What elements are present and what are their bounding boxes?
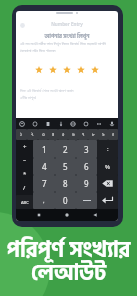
button[interactable]: – [16, 153, 33, 167]
button[interactable]: Backspace [97, 175, 118, 192]
button[interactable]: ১ [16, 129, 27, 140]
button[interactable]: 3 [76, 140, 97, 158]
staticText: ৭ [82, 132, 85, 137]
staticText: লেআউট [0, 256, 137, 291]
button[interactable]: Enter [97, 192, 118, 209]
staticText: আপনার সংখ্যা লিখুন [16, 32, 118, 41]
button[interactable]: Translate [69, 120, 77, 128]
button[interactable]: 1 [33, 140, 55, 158]
staticText: ABC [21, 200, 29, 205]
staticText: 3 [84, 144, 89, 155]
staticText: 8 [63, 178, 68, 189]
button[interactable]: Sticker [31, 120, 39, 128]
button[interactable]: Space [76, 192, 97, 209]
button[interactable]: Star [77, 66, 85, 74]
staticText: 4 [42, 161, 47, 172]
button[interactable]: ২ [27, 129, 38, 140]
staticText: এই সব সংখ্যা সঠিক ভাবে লিখুন নিচের কিবোর… [20, 41, 112, 53]
staticText: 1 [42, 144, 47, 155]
staticText: % [105, 163, 110, 171]
staticText: ৯ [102, 132, 105, 137]
button[interactable]: ৪ [48, 129, 58, 140]
button[interactable]: Back [19, 22, 26, 29]
button[interactable]: Back [90, 210, 100, 220]
button[interactable]: Star [49, 66, 57, 74]
staticText: , [43, 197, 45, 205]
button[interactable]: 4 [33, 158, 55, 175]
staticText: ৪ [52, 132, 55, 137]
staticText: 0 [63, 195, 68, 206]
button[interactable]: 6 [76, 158, 97, 175]
button[interactable]: ৯ [98, 129, 108, 140]
button[interactable]: 0 [55, 192, 76, 209]
staticText: * [23, 170, 27, 178]
staticText: 2 [63, 144, 68, 155]
button[interactable]: 5 [55, 158, 76, 175]
staticText: 6 [84, 161, 89, 172]
staticText: – [23, 156, 27, 164]
button[interactable]: Theme [82, 120, 90, 128]
button[interactable]: Star [91, 66, 99, 74]
staticText: পরিপূর্ণ সংখ্যার [0, 233, 137, 268]
button[interactable]: ৩ [38, 129, 48, 140]
button[interactable]: / [16, 181, 33, 195]
button[interactable]: Voice input [108, 120, 116, 128]
staticText: নিচে এই কিবোর্ড থেকে সংখ্যা প্রবেশ করান … [20, 88, 100, 101]
button[interactable]: ৮ [88, 129, 98, 140]
staticText: 5 [63, 161, 68, 172]
staticText: Number Entry [16, 21, 118, 27]
button[interactable]: Star [63, 66, 71, 74]
button[interactable]: Clipboard [44, 120, 52, 128]
button[interactable]: ৭ [78, 129, 88, 140]
button[interactable]: , [33, 192, 55, 209]
staticText: ০ [112, 132, 115, 137]
button[interactable]: + [16, 140, 33, 153]
button[interactable]: Home [62, 210, 72, 220]
button[interactable]: ০ [108, 129, 118, 140]
button[interactable]: Emoji [18, 120, 26, 128]
button[interactable]: ৬ [68, 129, 78, 140]
staticText: / [23, 184, 26, 192]
staticText: 9 [84, 178, 89, 189]
staticText: : [107, 145, 109, 153]
staticText: + [23, 143, 27, 151]
button[interactable]: Star [35, 66, 43, 74]
staticText: ১ [20, 132, 23, 137]
staticText: ৮ [92, 132, 95, 137]
staticText: ৬ [72, 132, 75, 137]
button[interactable]: * [16, 167, 33, 181]
button[interactable]: 7 [33, 175, 55, 192]
staticText: ২ [31, 132, 34, 137]
staticText: 7 [42, 178, 47, 189]
button[interactable]: 2 [55, 140, 76, 158]
button[interactable]: ABC [16, 195, 33, 209]
staticText: ৫ [62, 132, 65, 137]
button[interactable]: : [97, 140, 118, 158]
button[interactable]: % [97, 158, 118, 175]
button[interactable]: ৫ [58, 129, 68, 140]
button[interactable]: Share [57, 120, 65, 128]
staticText: ৩ [42, 132, 45, 137]
button[interactable]: 8 [55, 175, 76, 192]
button[interactable]: More options [95, 120, 103, 128]
button[interactable]: 9 [76, 175, 97, 192]
button[interactable]: Recents [34, 210, 44, 220]
